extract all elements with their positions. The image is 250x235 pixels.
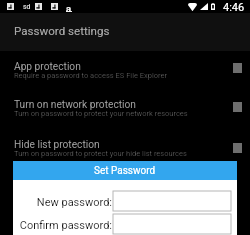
- button[interactable]: [113, 214, 231, 234]
- staticText: Password settings: [14, 24, 110, 38]
- staticText: New password:: [17, 196, 112, 209]
- staticText: Turn on network protection: [14, 99, 136, 111]
- staticText: Hide list protection: [14, 139, 100, 151]
- staticText: sd: [23, 3, 31, 11]
- staticText: Require a password to access ES File Exp…: [14, 71, 168, 80]
- button[interactable]: Turn on network protection: [0, 90, 250, 129]
- button[interactable]: App protection: [0, 52, 250, 91]
- staticText: Confirm password:: [17, 219, 112, 232]
- staticText: Set Password: [94, 165, 156, 177]
- staticText: 4:46: [223, 1, 245, 14]
- staticText: Turn on password to protect your hide li…: [14, 149, 187, 158]
- button[interactable]: [113, 191, 231, 211]
- staticText: Turn on password to protect your network…: [14, 109, 188, 118]
- staticText: a: [66, 3, 72, 14]
- button[interactable]: Hide list protection: [0, 130, 250, 169]
- staticText: App protection: [14, 61, 81, 73]
